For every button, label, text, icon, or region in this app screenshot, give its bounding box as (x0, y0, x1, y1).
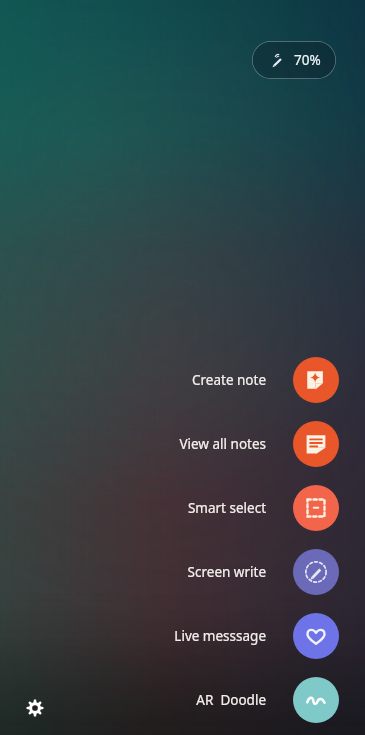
staticText: 70% (294, 51, 321, 69)
button[interactable]: Live messsage (0, 604, 365, 668)
staticText: Live messsage (174, 627, 266, 645)
button[interactable]: AR Doodle (0, 668, 365, 732)
staticText: AR Doodle (196, 691, 266, 709)
staticText: Create note (191, 371, 266, 389)
button[interactable]: Smart select (0, 476, 365, 540)
staticText: Smart select (187, 499, 266, 517)
staticText: View all notes (179, 435, 266, 453)
button[interactable]: Screen write (0, 540, 365, 604)
button[interactable]: Create note (0, 348, 365, 412)
staticText: Screen write (187, 563, 266, 581)
button[interactable]: Settings (14, 687, 56, 729)
button[interactable]: S Pen battery 70 percent (252, 41, 336, 79)
button[interactable]: View all notes (0, 412, 365, 476)
